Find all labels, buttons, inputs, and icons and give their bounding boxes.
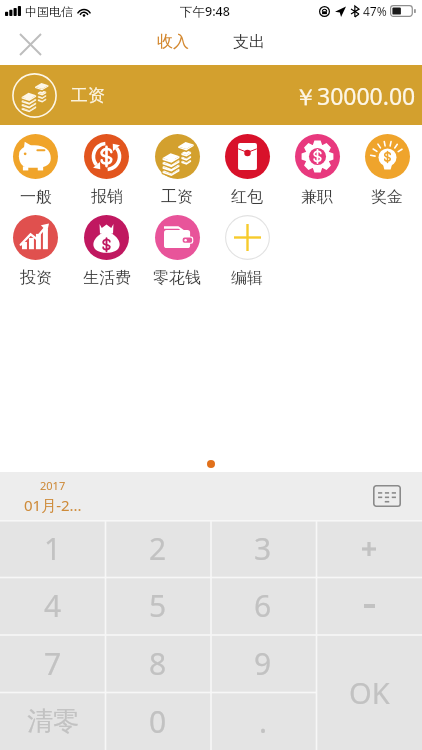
staticText: 工资 xyxy=(161,187,193,206)
staticText: 1 xyxy=(44,528,62,569)
staticText: 奖金 xyxy=(371,187,403,206)
staticText: 收入 xyxy=(157,32,189,52)
button[interactable]: 生活费 xyxy=(71,206,142,287)
staticText: 3 xyxy=(254,528,272,569)
button[interactable]: 0 xyxy=(105,692,210,750)
staticText: 7 xyxy=(44,643,62,684)
staticText: 9 xyxy=(254,643,272,684)
staticText: 工资 xyxy=(71,85,105,106)
button[interactable]: 收入 xyxy=(149,25,196,59)
staticText: 5 xyxy=(149,585,167,626)
staticText: OK xyxy=(349,673,390,712)
staticText: 01月-2... xyxy=(24,495,82,515)
button[interactable]: 红包 xyxy=(212,125,282,206)
button[interactable]: 3 xyxy=(210,520,316,577)
staticText: 0 xyxy=(149,701,167,742)
button[interactable]: 7 xyxy=(0,634,105,692)
staticText: 47% xyxy=(363,3,387,19)
button[interactable]: 1 xyxy=(0,520,105,577)
button[interactable]: 6 xyxy=(210,577,316,634)
button[interactable]: Minus xyxy=(316,577,422,635)
staticText: 支出 xyxy=(233,32,265,52)
staticText: 编辑 xyxy=(231,268,263,287)
button[interactable]: 2 xyxy=(105,520,210,577)
staticText: 兼职 xyxy=(301,187,333,206)
button[interactable]: 零花钱 xyxy=(142,206,212,287)
button[interactable]: 工资 xyxy=(142,125,212,206)
button[interactable]: OK xyxy=(316,635,422,750)
button[interactable]: 5 xyxy=(105,577,210,634)
staticText: 一般 xyxy=(20,187,52,206)
button[interactable]: 工资 xyxy=(0,65,422,125)
button[interactable]: 支出 xyxy=(225,25,272,59)
button[interactable]: . xyxy=(210,692,316,750)
button[interactable]: 8 xyxy=(105,634,210,692)
staticText: 中国电信 xyxy=(25,4,73,19)
button[interactable]: 9 xyxy=(210,634,316,692)
staticText: 下午9:48 xyxy=(180,3,230,20)
staticText: 报销 xyxy=(91,187,123,206)
staticText: 清零 xyxy=(27,705,79,738)
button[interactable]: 一般 xyxy=(0,125,71,206)
staticText: 6 xyxy=(254,585,272,626)
button[interactable]: 报销 xyxy=(71,125,142,206)
button[interactable]: Hide keyboard xyxy=(370,482,404,510)
staticText: 4 xyxy=(44,585,62,626)
button[interactable]: 奖金 xyxy=(352,125,422,206)
staticText: ￥30000.00 xyxy=(294,80,416,111)
button[interactable]: 清零 xyxy=(0,692,105,750)
staticText: 2017 xyxy=(40,478,66,493)
button[interactable]: 编辑 xyxy=(212,206,282,287)
staticText: 2 xyxy=(149,528,167,569)
button[interactable]: Close xyxy=(12,26,48,62)
button[interactable]: 4 xyxy=(0,577,105,634)
button[interactable]: 投资 xyxy=(0,206,71,287)
staticText: . xyxy=(259,701,268,742)
staticText: 生活费 xyxy=(83,268,131,287)
staticText: 红包 xyxy=(231,187,263,206)
staticText: 零花钱 xyxy=(153,268,201,287)
staticText: 8 xyxy=(149,643,167,684)
button[interactable]: 兼职 xyxy=(282,125,352,206)
button[interactable]: 2017 xyxy=(24,478,82,515)
staticText: 投资 xyxy=(20,268,52,287)
button[interactable]: Plus xyxy=(316,520,422,577)
